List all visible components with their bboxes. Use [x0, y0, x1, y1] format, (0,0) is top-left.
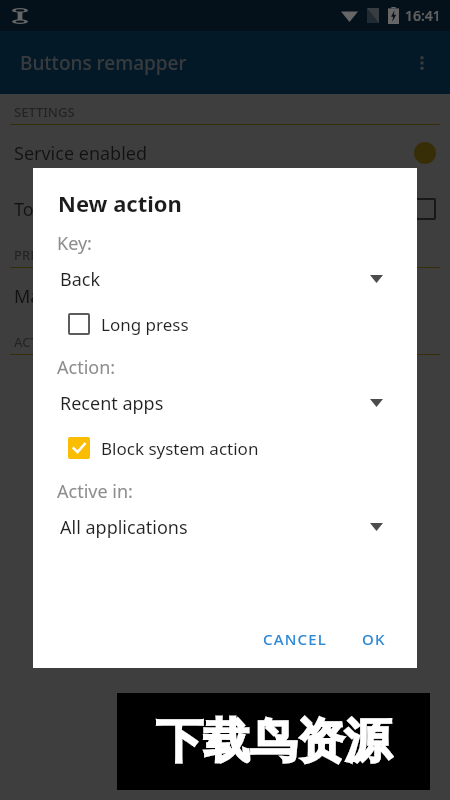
staticText: 16:41: [405, 6, 441, 25]
staticText: All applications: [60, 515, 188, 540]
staticText: PRESETS: [14, 246, 67, 264]
staticText: 下载鸟资源: [156, 712, 391, 771]
button[interactable]: Service enabled: [0, 125, 450, 181]
staticText: Toggle on boot: [14, 197, 142, 222]
button[interactable]: More options: [402, 43, 442, 83]
button[interactable]: Block system action: [55, 432, 395, 464]
button[interactable]: OK: [353, 620, 395, 658]
button[interactable]: Long press: [55, 308, 395, 340]
staticText: Block system action: [101, 437, 259, 460]
staticText: OK: [362, 629, 386, 649]
button[interactable]: Recent apps: [55, 389, 395, 417]
button[interactable]: Manage presets: [0, 268, 450, 324]
staticText: Key:: [57, 231, 92, 256]
button[interactable]: CANCEL: [254, 620, 337, 658]
staticText: Active in:: [57, 479, 133, 504]
staticText: Long press: [101, 313, 189, 336]
button[interactable]: Back: [55, 265, 395, 293]
staticText: Back: [60, 267, 101, 292]
staticText: Action:: [57, 355, 116, 380]
staticText: CANCEL: [263, 629, 328, 649]
button[interactable]: Toggle on boot: [0, 181, 450, 237]
staticText: SETTINGS: [14, 103, 75, 121]
staticText: Service enabled: [14, 141, 148, 166]
button[interactable]: All applications: [55, 513, 395, 541]
staticText: ACTIONS: [14, 333, 70, 351]
staticText: Manage presets: [14, 284, 150, 309]
staticText: Buttons remapper: [20, 50, 187, 76]
staticText: New action: [58, 188, 182, 218]
staticText: Recent apps: [60, 391, 164, 416]
